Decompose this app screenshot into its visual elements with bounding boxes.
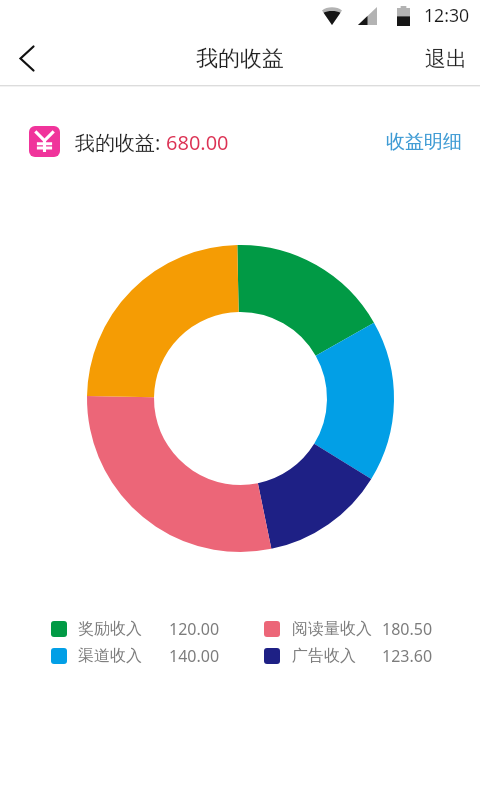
staticText: 120.00: [169, 618, 220, 640]
button[interactable]: 奖励收入: [51, 616, 251, 642]
staticText: 广告收入: [292, 646, 356, 666]
staticText: 退出: [425, 46, 467, 72]
staticText: 我的收益: [196, 45, 284, 73]
staticText: 渠道收入: [78, 646, 142, 666]
staticText: 12:30: [424, 3, 470, 27]
staticText: 123.60: [382, 645, 433, 667]
staticText: 180.50: [382, 618, 433, 640]
staticText: 阅读量收入: [292, 619, 372, 639]
staticText: 140.00: [169, 645, 220, 667]
button[interactable]: Back: [0, 32, 53, 85]
button[interactable]: 广告收入: [264, 643, 444, 669]
staticText: 收益明细: [386, 130, 462, 154]
staticText: 我的收益:: [75, 129, 166, 156]
staticText: 奖励收入: [78, 619, 142, 639]
other: Earnings: [29, 126, 60, 157]
button[interactable]: 渠道收入: [51, 643, 251, 669]
button[interactable]: 阅读量收入: [264, 616, 444, 642]
button[interactable]: 收益明细: [372, 126, 480, 158]
button[interactable]: 退出: [407, 32, 480, 85]
staticText: 680.00: [166, 129, 229, 156]
